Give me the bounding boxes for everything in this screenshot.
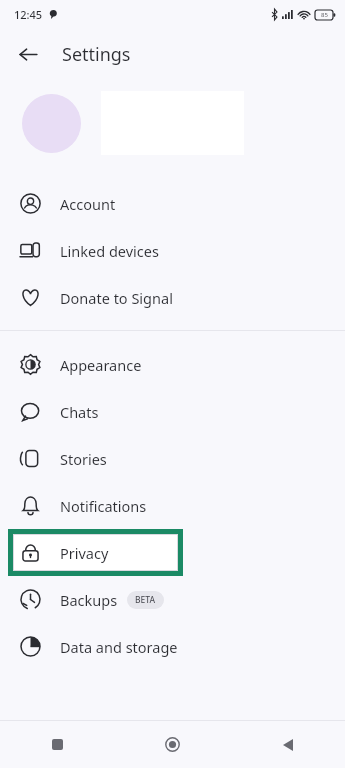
staticText: BETA: [135, 594, 156, 606]
button[interactable]: Notifications: [0, 482, 345, 529]
staticText: Linked devices: [60, 241, 159, 261]
button[interactable]: Backups: [0, 576, 345, 623]
staticText: Settings: [62, 42, 131, 67]
staticText: Appearance: [60, 355, 142, 375]
staticText: Stories: [60, 449, 107, 469]
staticText: 12:45: [14, 7, 43, 22]
button[interactable]: Chats: [0, 388, 345, 435]
staticText: Backups: [60, 590, 118, 610]
button[interactable]: Back: [230, 721, 345, 768]
staticText: Data and storage: [60, 637, 178, 657]
button[interactable]: Account: [0, 180, 345, 227]
staticText: Privacy: [60, 543, 109, 563]
button[interactable]: Recents: [0, 721, 115, 768]
button[interactable]: Data and storage: [0, 623, 345, 670]
staticText: Chats: [60, 402, 99, 422]
button[interactable]: Stories: [0, 435, 345, 482]
button[interactable]: Home: [115, 721, 230, 768]
staticText: Notifications: [60, 496, 147, 516]
button[interactable]: Privacy: [0, 529, 345, 576]
button[interactable]: Appearance: [0, 341, 345, 388]
staticText: Donate to Signal: [60, 288, 173, 308]
button[interactable]: Linked devices: [0, 227, 345, 274]
button[interactable]: Donate to Signal: [0, 274, 345, 321]
staticText: 85: [321, 11, 328, 19]
staticText: Account: [60, 194, 116, 214]
button[interactable]: Back: [8, 34, 48, 74]
button[interactable]: [0, 80, 345, 166]
